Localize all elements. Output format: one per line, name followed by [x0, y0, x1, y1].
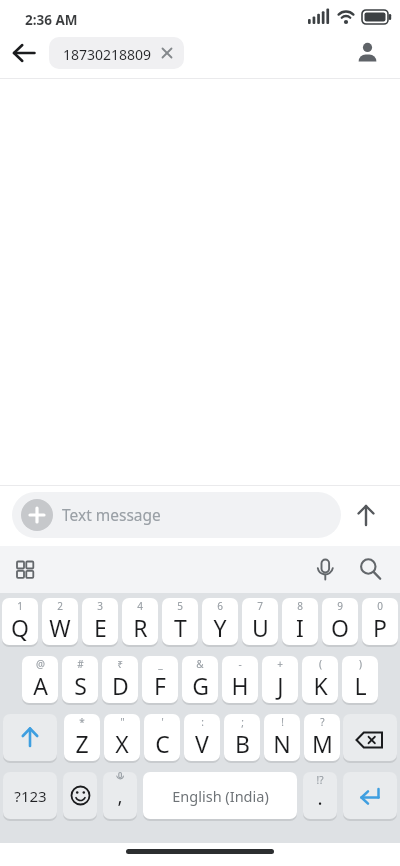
- button[interactable]: C: [144, 714, 180, 761]
- staticText: 1: [17, 599, 23, 613]
- button[interactable]: ?123: [3, 772, 57, 819]
- staticText: O: [331, 612, 349, 643]
- button[interactable]: W: [42, 598, 78, 645]
- button[interactable]: T: [162, 598, 198, 645]
- button[interactable]: U: [242, 598, 278, 645]
- button[interactable]: H: [222, 656, 258, 703]
- button[interactable]: 18730218809: [49, 37, 184, 69]
- staticText: @: [36, 657, 45, 671]
- button[interactable]: E: [82, 598, 118, 645]
- staticText: K: [313, 670, 328, 701]
- button[interactable]: [312, 556, 338, 582]
- button[interactable]: Z: [64, 714, 100, 761]
- button[interactable]: [21, 499, 53, 531]
- staticText: U: [252, 612, 269, 643]
- button[interactable]: I: [282, 598, 318, 645]
- button[interactable]: [350, 499, 382, 531]
- button[interactable]: F: [142, 656, 178, 703]
- button[interactable]: R: [122, 598, 158, 645]
- button[interactable]: Q: [2, 598, 38, 645]
- staticText: S: [74, 670, 87, 701]
- staticText: !: [281, 715, 284, 729]
- staticText: 18730218809: [63, 45, 152, 64]
- button[interactable]: English (India): [143, 772, 297, 819]
- staticText: ₹: [117, 657, 123, 671]
- button[interactable]: M: [304, 714, 340, 761]
- staticText: +: [277, 657, 283, 671]
- staticText: Y: [213, 612, 227, 643]
- staticText: V: [195, 728, 209, 759]
- button[interactable]: B: [224, 714, 260, 761]
- staticText: R: [133, 612, 148, 643]
- staticText: B: [235, 728, 250, 759]
- button[interactable]: [343, 772, 397, 819]
- staticText: ?: [320, 715, 325, 729]
- button[interactable]: G: [182, 656, 218, 703]
- staticText: N: [273, 728, 291, 759]
- button[interactable]: V: [184, 714, 220, 761]
- staticText: 9: [337, 599, 343, 613]
- staticText: &: [196, 657, 204, 671]
- button[interactable]: N: [264, 714, 300, 761]
- staticText: -: [238, 657, 242, 671]
- staticText: T: [174, 612, 187, 643]
- staticText: C: [155, 728, 170, 759]
- staticText: 2:36 AM: [25, 11, 78, 29]
- button[interactable]: D: [102, 656, 138, 703]
- staticText: 3: [97, 599, 103, 613]
- staticText: #: [77, 657, 84, 671]
- button[interactable]: [63, 772, 97, 819]
- button[interactable]: [3, 714, 57, 761]
- staticText: 2: [57, 599, 63, 613]
- staticText: X: [115, 728, 129, 759]
- staticText: M: [312, 728, 333, 759]
- button[interactable]: .: [303, 772, 337, 819]
- staticText: _: [158, 657, 163, 671]
- staticText: Q: [11, 612, 29, 643]
- staticText: W: [49, 612, 71, 643]
- staticText: J: [277, 670, 284, 701]
- staticText: ): [359, 657, 362, 671]
- button[interactable]: J: [262, 656, 298, 703]
- button[interactable]: A: [22, 656, 58, 703]
- button[interactable]: L: [342, 656, 378, 703]
- staticText: ;: [241, 715, 244, 729]
- staticText: 5: [177, 599, 183, 613]
- staticText: *: [79, 715, 85, 729]
- button[interactable]: K: [302, 656, 338, 703]
- staticText: 7: [257, 599, 263, 613]
- staticText: P: [373, 612, 387, 643]
- staticText: I: [296, 612, 304, 643]
- staticText: ,: [117, 783, 123, 809]
- button[interactable]: [343, 714, 397, 761]
- staticText: 4: [137, 599, 143, 613]
- staticText: !?: [316, 773, 324, 787]
- button[interactable]: [352, 37, 386, 69]
- staticText: 6: [217, 599, 223, 613]
- staticText: E: [94, 612, 107, 643]
- button[interactable]: [356, 556, 382, 582]
- staticText: F: [154, 670, 166, 701]
- staticText: Z: [75, 728, 89, 759]
- button[interactable]: [12, 556, 38, 582]
- staticText: D: [112, 670, 129, 701]
- button[interactable]: Text message: [12, 492, 341, 538]
- button[interactable]: S: [62, 656, 98, 703]
- staticText: ?123: [14, 786, 47, 806]
- staticText: ": [120, 715, 125, 729]
- staticText: A: [33, 670, 48, 701]
- button[interactable]: Y: [202, 598, 238, 645]
- staticText: (: [319, 657, 322, 671]
- staticText: :: [201, 715, 204, 729]
- staticText: Text message: [62, 504, 161, 525]
- staticText: G: [192, 670, 209, 701]
- button[interactable]: P: [362, 598, 398, 645]
- staticText: ': [161, 715, 164, 729]
- staticText: L: [354, 670, 367, 701]
- button[interactable]: [8, 37, 42, 69]
- staticText: 0: [377, 599, 383, 613]
- staticText: H: [231, 670, 249, 701]
- button[interactable]: X: [104, 714, 140, 761]
- button[interactable]: O: [322, 598, 358, 645]
- button[interactable]: ,: [103, 772, 137, 819]
